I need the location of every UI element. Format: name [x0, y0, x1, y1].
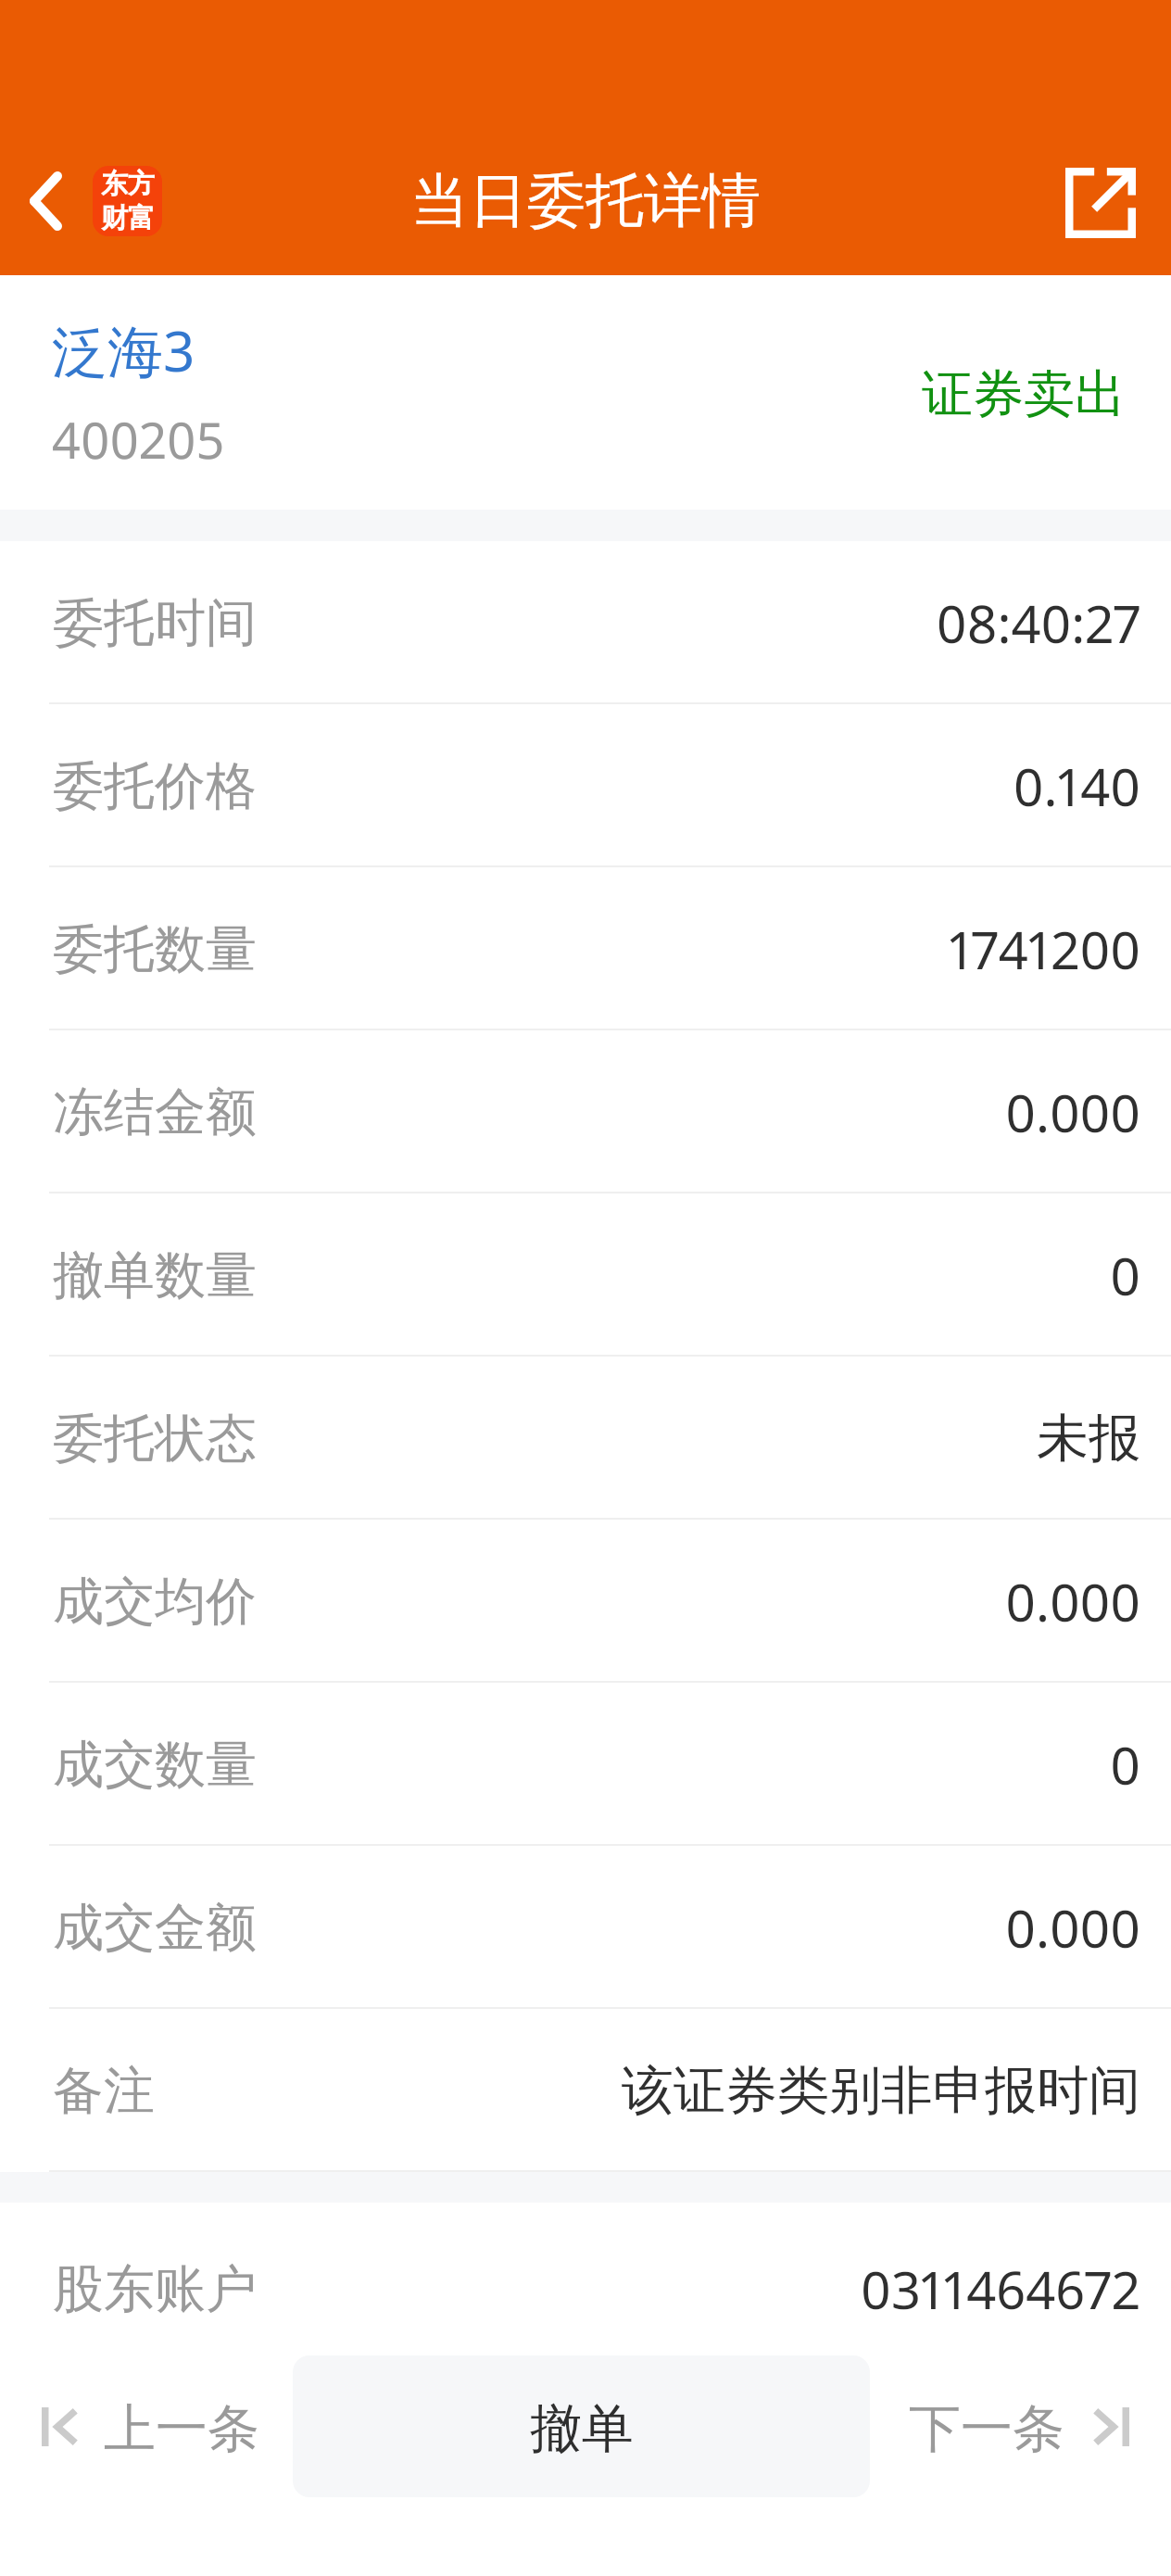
staticText: 成交金额 — [53, 1896, 257, 1960]
staticText: 0 — [1110, 1240, 1140, 1310]
button[interactable]: 冻结金额 — [0, 1030, 1171, 1193]
button[interactable]: 备注 — [0, 2009, 1171, 2172]
staticText: 上一条 — [104, 2396, 259, 2462]
staticText: 0.000 — [1005, 1566, 1140, 1636]
staticText: 0 — [1110, 1729, 1140, 1799]
staticText: 东方 — [101, 167, 155, 201]
staticText: 委托价格 — [53, 754, 257, 818]
staticText: 撤单 — [530, 2396, 634, 2462]
staticText: 委托时间 — [53, 591, 257, 655]
button[interactable]: 委托数量 — [0, 867, 1171, 1030]
button[interactable]: 委托时间 — [0, 541, 1171, 704]
button[interactable]: 股东账户 — [0, 2203, 1171, 2375]
staticText: 财富 — [101, 201, 155, 235]
button[interactable]: 成交均价 — [0, 1520, 1171, 1683]
button[interactable]: 上一条 — [0, 2355, 293, 2497]
staticText: 1741200 — [949, 914, 1140, 984]
staticText: 冻结金额 — [53, 1080, 257, 1144]
button[interactable]: 泛海3 — [52, 312, 195, 388]
staticText: 0.140 — [1013, 751, 1140, 821]
button[interactable]: 委托状态 — [0, 1357, 1171, 1520]
button[interactable]: 成交金额 — [0, 1846, 1171, 2009]
staticText: 0.000 — [1005, 1892, 1140, 1963]
staticText: 下一条 — [909, 2396, 1064, 2462]
button[interactable]: Back — [24, 160, 162, 242]
button[interactable]: 下一条 — [870, 2355, 1171, 2497]
staticText: 成交均价 — [53, 1570, 257, 1634]
staticText: 08:40:27 — [936, 587, 1140, 658]
button[interactable]: 成交数量 — [0, 1683, 1171, 1846]
staticText: 撤单数量 — [53, 1244, 257, 1307]
button[interactable]: 撤单 — [293, 2355, 870, 2497]
staticText: 0311464672 — [861, 2254, 1140, 2324]
staticText: 未报 — [1037, 1406, 1140, 1471]
staticText: 委托状态 — [53, 1407, 257, 1471]
staticText: 证券卖出 — [922, 362, 1126, 426]
staticText: 成交数量 — [53, 1733, 257, 1797]
staticText: 当日委托详情 — [410, 164, 761, 237]
staticText: 备注 — [53, 2059, 155, 2123]
staticText: 股东账户 — [53, 2257, 257, 2321]
button[interactable]: 委托价格 — [0, 704, 1171, 867]
button[interactable]: Share — [1050, 152, 1152, 254]
staticText: 委托数量 — [53, 917, 257, 981]
staticText: 该证券类别非申报时间 — [622, 2058, 1140, 2124]
button[interactable]: 撤单数量 — [0, 1193, 1171, 1357]
staticText: 400205 — [52, 405, 225, 474]
staticText: 0.000 — [1005, 1077, 1140, 1147]
